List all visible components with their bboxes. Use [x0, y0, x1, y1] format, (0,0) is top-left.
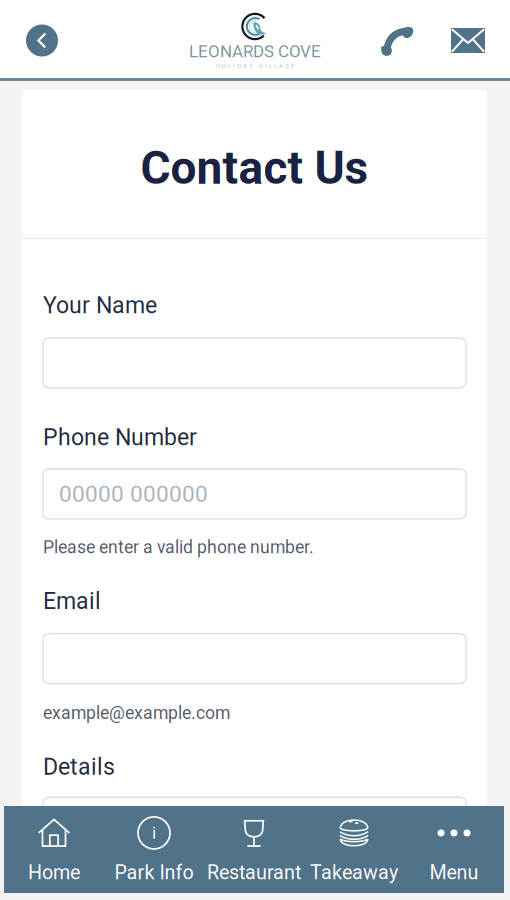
- staticText: Details: [43, 753, 115, 780]
- staticText: Park Info: [114, 861, 193, 884]
- button[interactable]: Home: [4, 807, 104, 892]
- button[interactable]: Menu: [404, 807, 504, 892]
- staticText: example@example.com: [43, 703, 230, 723]
- staticText: Phone Number: [43, 424, 197, 451]
- staticText: Home: [28, 861, 80, 884]
- staticText: Restaurant: [207, 861, 301, 884]
- staticText: Your Name: [43, 292, 157, 319]
- staticText: Please enter a valid phone number.: [43, 537, 314, 558]
- staticText: Menu: [429, 861, 478, 884]
- staticText: LEONARDS COVE: [189, 41, 321, 61]
- button[interactable]: Back: [16, 14, 68, 66]
- button[interactable]: Call us: [371, 14, 423, 66]
- button[interactable]: i: [104, 807, 204, 892]
- button[interactable]: Email us: [442, 14, 494, 66]
- button[interactable]: Takeaway: [304, 807, 404, 892]
- staticText: H O L I D A Y V I L L A G E: [216, 62, 294, 69]
- staticText: Contact Us: [140, 141, 368, 195]
- staticText: Email: [43, 588, 101, 615]
- button[interactable]: Restaurant: [204, 807, 304, 892]
- staticText: Takeaway: [310, 861, 398, 884]
- staticText: i: [152, 823, 156, 843]
- staticText: 00000 000000: [59, 481, 208, 507]
